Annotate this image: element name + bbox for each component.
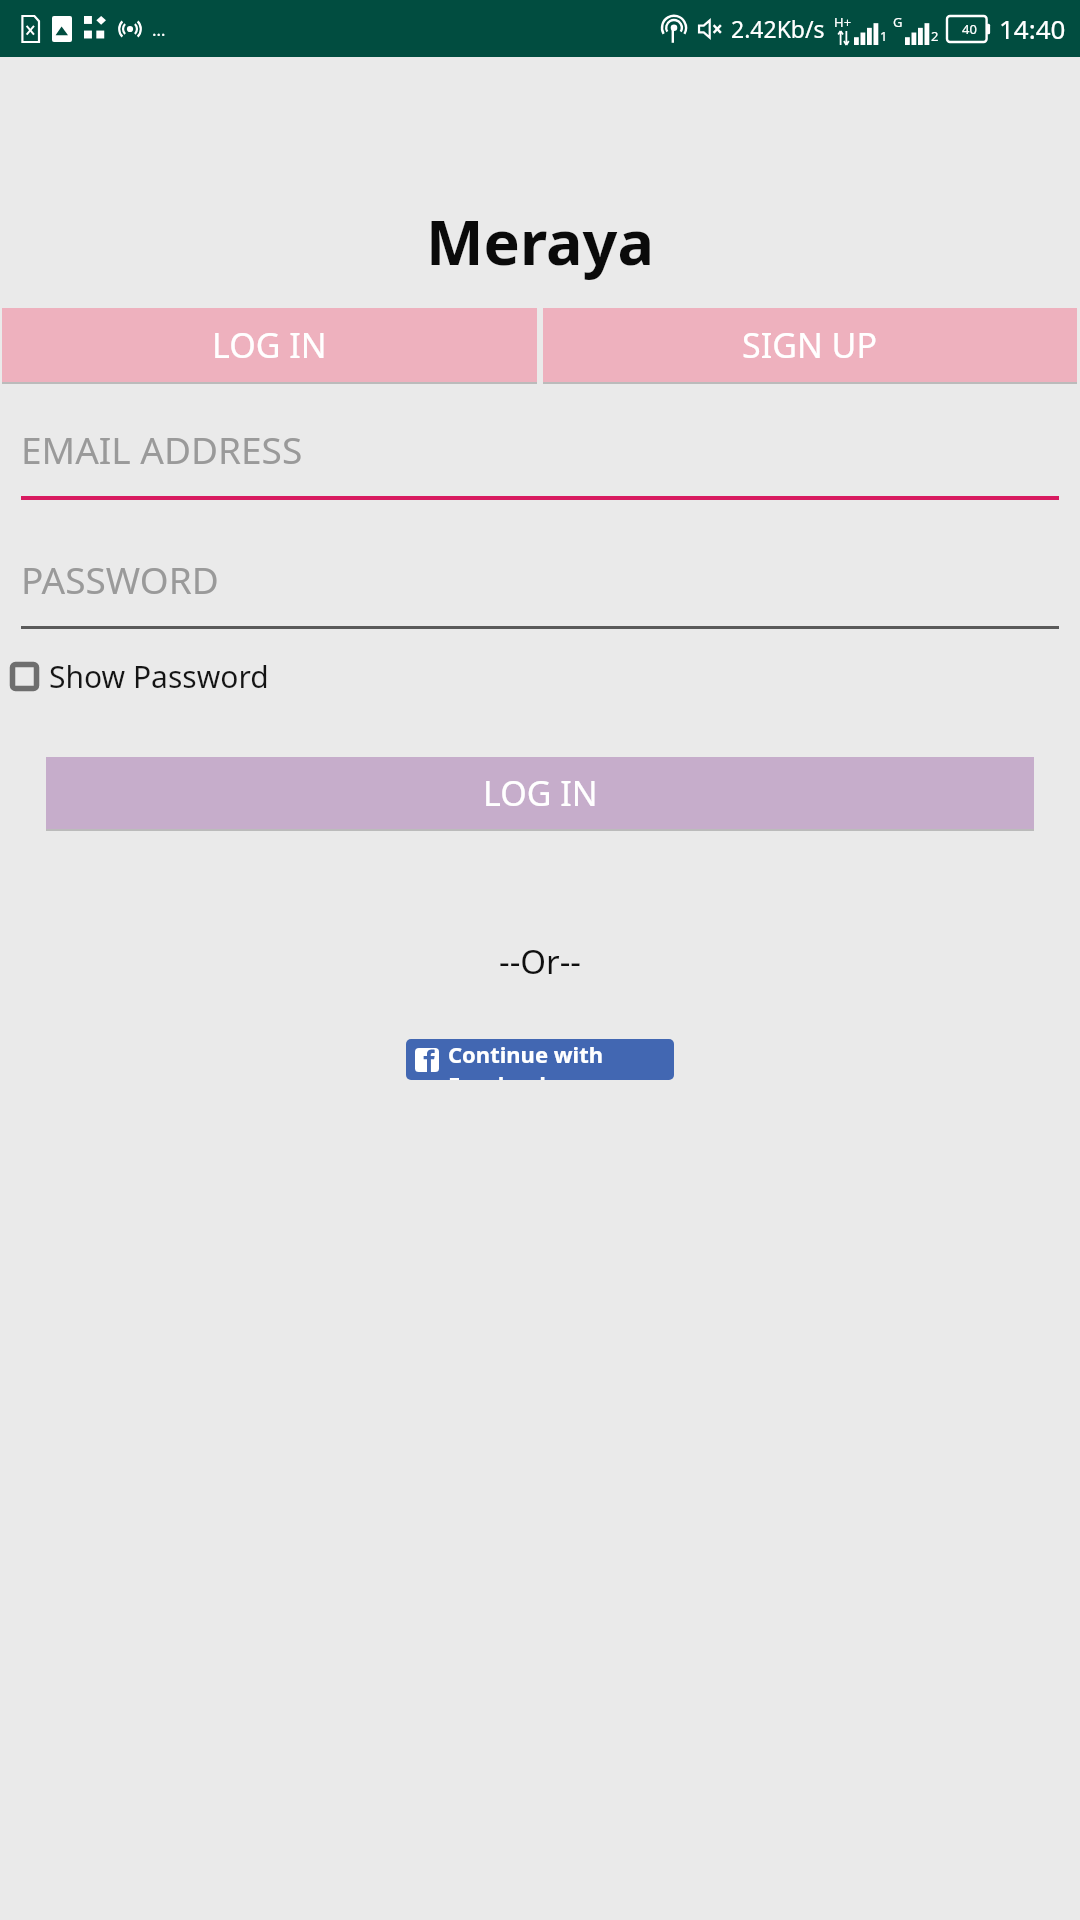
- staticText: PASSWORD: [21, 554, 219, 604]
- staticText: 14:40: [999, 11, 1066, 46]
- staticText: H+: [834, 13, 852, 31]
- staticText: G: [893, 13, 903, 31]
- button[interactable]: PASSWORD: [21, 554, 1059, 629]
- button[interactable]: Show Password: [9, 652, 271, 701]
- staticText: Continue with Facebook: [448, 1039, 674, 1080]
- staticText: LOG IN: [212, 322, 327, 368]
- staticText: SIGN UP: [742, 322, 878, 368]
- staticText: LOG IN: [483, 770, 598, 816]
- button[interactable]: Continue with Facebook: [406, 1039, 674, 1080]
- staticText: 1: [880, 27, 888, 45]
- staticText: 40: [962, 20, 977, 38]
- staticText: --Or--: [0, 939, 1080, 984]
- button[interactable]: LOG IN: [2, 308, 537, 382]
- staticText: Show Password: [49, 656, 269, 697]
- staticText: 2.42Kb/s: [731, 13, 825, 44]
- staticText: 2: [931, 27, 939, 45]
- staticText: EMAIL ADDRESS: [21, 424, 303, 474]
- button[interactable]: SIGN UP: [543, 308, 1077, 382]
- button[interactable]: LOG IN: [46, 757, 1034, 829]
- staticText: …: [152, 18, 166, 41]
- staticText: Meraya: [0, 200, 1080, 283]
- button[interactable]: EMAIL ADDRESS: [21, 424, 1059, 500]
